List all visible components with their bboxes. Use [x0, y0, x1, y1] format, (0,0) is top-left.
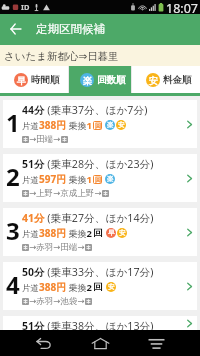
button[interactable]: Back	[0, 14, 31, 45]
button[interactable]: 4	[3, 262, 197, 310]
staticText: 時間順	[31, 74, 60, 86]
staticText: 片道388円 乗換2	[22, 280, 92, 294]
staticText: 51分 (乗車38分、ほか13分)	[22, 319, 154, 333]
staticText: 回	[95, 122, 101, 130]
staticText: 安	[119, 229, 126, 237]
staticText: 50分 (乗車33分、ほか17分)	[22, 265, 154, 280]
staticText: 51分 (乗車28分、ほか23分)	[22, 157, 154, 172]
staticText: 片道388円 乗換1	[22, 118, 92, 132]
staticText: 安	[149, 75, 158, 86]
staticText: 安	[118, 121, 125, 129]
button[interactable]: 2	[3, 154, 197, 202]
staticText: 片道388円 乗換2	[22, 334, 92, 348]
staticText: 料金順	[163, 74, 192, 86]
staticText: 早	[17, 75, 26, 86]
button[interactable]: Home	[80, 330, 120, 356]
staticText: 楽	[83, 75, 92, 86]
button[interactable]: Back	[23, 330, 63, 356]
button[interactable]: 早	[0, 66, 68, 93]
staticText: →上野→京成上野→	[29, 188, 102, 199]
staticText: 回	[95, 176, 101, 184]
staticText: 41分 (乗車27分、ほか14分)	[22, 211, 154, 226]
button[interactable]: 安	[132, 66, 200, 93]
staticText: 定期区間候補	[36, 22, 105, 36]
staticText: さいたま新都心⇒日暮里	[4, 50, 119, 63]
staticText: 回数順	[97, 74, 126, 86]
staticText: 4	[6, 268, 20, 301]
staticText: 18:07	[166, 0, 198, 14]
staticText: 2	[6, 160, 20, 193]
staticText: 1	[6, 106, 20, 139]
staticText: →赤羽→池袋→	[29, 296, 85, 307]
staticText: 安	[108, 283, 115, 291]
button[interactable]: 楽	[69, 66, 131, 93]
staticText: ID	[21, 2, 30, 12]
staticText: →赤羽→田端→	[29, 242, 85, 253]
staticText: 早	[108, 229, 115, 237]
button[interactable]: 1	[3, 100, 197, 148]
staticText: 片道597円 乗換1	[22, 172, 92, 186]
staticText: 回	[93, 335, 103, 347]
staticText: 楽	[107, 121, 114, 129]
staticText: 5	[6, 322, 20, 336]
staticText: 回	[93, 281, 103, 293]
button[interactable]: 3	[3, 208, 197, 256]
staticText: 44分 (乗車37分、ほか7分)	[22, 103, 148, 118]
staticText: 楽	[107, 175, 114, 183]
staticText: →田端→	[29, 134, 61, 145]
staticText: 3	[6, 214, 20, 247]
button[interactable]: Recents	[136, 330, 176, 356]
button[interactable]: 5	[3, 316, 197, 330]
staticText: 片道388円 乗換2	[22, 226, 92, 240]
staticText: 回	[93, 227, 103, 239]
